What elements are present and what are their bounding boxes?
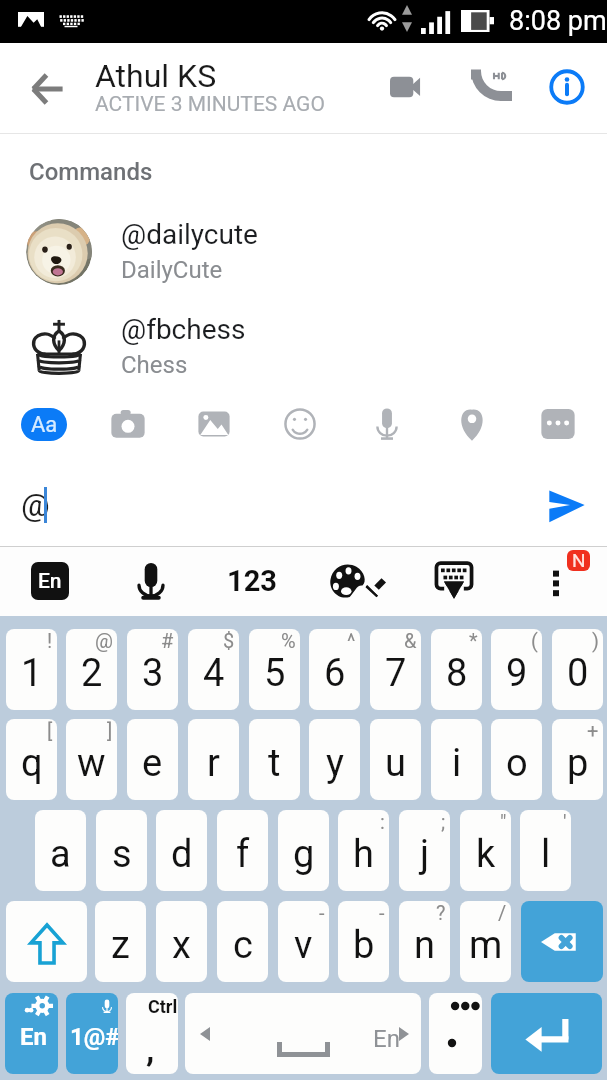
button[interactable]: a: [35, 810, 86, 891]
button[interactable]: #: [127, 629, 178, 710]
staticText: z: [111, 923, 130, 968]
button[interactable]: e: [127, 719, 178, 800]
button[interactable]: c: [217, 901, 268, 982]
button[interactable]: g: [278, 810, 329, 891]
staticText: 8: [446, 651, 468, 696]
button[interactable]: ": [460, 810, 511, 891]
button[interactable]: [: [6, 719, 57, 800]
button[interactable]: &: [370, 629, 421, 710]
button[interactable]: @dailycute: [0, 214, 607, 290]
button[interactable]: :: [338, 810, 389, 891]
staticText: +: [587, 719, 599, 742]
button[interactable]: +: [552, 719, 603, 800]
staticText: N: [572, 550, 586, 570]
button[interactable]: !: [6, 629, 57, 710]
button[interactable]: Stickers: [274, 398, 326, 450]
button[interactable]: ): [552, 629, 603, 710]
staticText: En: [373, 1025, 400, 1053]
button[interactable]: Enter: [491, 993, 602, 1074]
button[interactable]: t: [249, 719, 300, 800]
staticText: m: [469, 923, 503, 968]
staticText: Chess: [121, 351, 188, 379]
button[interactable]: x: [156, 901, 207, 982]
button[interactable]: ': [520, 810, 571, 891]
button[interactable]: More: [532, 398, 584, 450]
staticText: ;: [441, 810, 446, 833]
button[interactable]: Video call: [381, 62, 431, 112]
button[interactable]: $: [188, 629, 239, 710]
button[interactable]: r: [188, 719, 239, 800]
staticText: &: [404, 629, 417, 652]
button[interactable]: (: [491, 629, 542, 710]
staticText: y: [326, 741, 344, 786]
button[interactable]: Space: [185, 993, 421, 1074]
button[interactable]: Theme: [323, 551, 383, 611]
staticText: ): [592, 629, 599, 652]
button[interactable]: *: [431, 629, 482, 710]
button[interactable]: Language En: [5, 993, 58, 1074]
staticText: j: [420, 832, 430, 877]
button[interactable]: @fbchess: [0, 309, 607, 385]
button[interactable]: -: [338, 901, 389, 982]
staticText: Athul KS: [95, 57, 217, 95]
button[interactable]: -: [278, 901, 329, 982]
staticText: d: [171, 832, 193, 877]
button[interactable]: ]: [66, 719, 117, 800]
button[interactable]: Back: [21, 63, 73, 115]
button[interactable]: Numbers: [222, 551, 282, 611]
button[interactable]: Send: [541, 479, 593, 531]
staticText: @fbchess: [121, 313, 246, 346]
staticText: v: [294, 923, 313, 968]
button[interactable]: ^: [309, 629, 360, 710]
button[interactable]: Hide keyboard: [424, 551, 484, 611]
button[interactable]: Shift: [6, 901, 87, 982]
button[interactable]: Aa: [21, 408, 67, 441]
staticText: b: [353, 923, 375, 968]
staticText: ^: [347, 629, 356, 652]
staticText: p: [567, 741, 589, 786]
staticText: DailyCute: [121, 256, 223, 284]
staticText: f: [236, 832, 250, 877]
button[interactable]: [429, 993, 482, 1074]
button[interactable]: @: [66, 629, 117, 710]
button[interactable]: Language: [20, 551, 80, 611]
button[interactable]: Location: [446, 398, 498, 450]
staticText: /: [498, 901, 507, 924]
staticText: 5: [264, 651, 286, 696]
button[interactable]: y: [309, 719, 360, 800]
button[interactable]: s: [96, 810, 147, 891]
staticText: 6: [324, 651, 346, 696]
button[interactable]: Camera: [102, 398, 154, 450]
button[interactable]: Backspace: [521, 901, 603, 982]
staticText: @: [95, 629, 113, 652]
button[interactable]: ?: [399, 901, 450, 982]
button[interactable]: Photos: [188, 398, 240, 450]
button[interactable]: f: [217, 810, 268, 891]
button[interactable]: 1@#: [66, 993, 118, 1074]
staticText: 3: [142, 651, 164, 696]
staticText: 1@#: [70, 1023, 118, 1051]
button[interactable]: Ctrl: [126, 993, 178, 1074]
button[interactable]: Voice input: [121, 551, 181, 611]
button[interactable]: Menu: [526, 551, 586, 611]
staticText: Ctrl: [148, 996, 178, 1017]
staticText: 1: [21, 651, 43, 696]
button[interactable]: /: [460, 901, 511, 982]
button[interactable]: o: [491, 719, 542, 800]
button[interactable]: %: [249, 629, 300, 710]
staticText: 123: [227, 564, 277, 598]
button[interactable]: i: [431, 719, 482, 800]
button[interactable]: Conversation info: [542, 62, 592, 112]
button[interactable]: Voice call: [462, 62, 512, 112]
staticText: #: [161, 629, 174, 652]
staticText: q: [21, 741, 43, 786]
staticText: x: [172, 923, 191, 968]
staticText: g: [293, 832, 315, 877]
staticText: s: [112, 832, 132, 877]
button[interactable]: Voice message: [361, 398, 413, 450]
button[interactable]: u: [370, 719, 421, 800]
button[interactable]: d: [156, 810, 207, 891]
staticText: k: [476, 832, 496, 877]
button[interactable]: ;: [399, 810, 450, 891]
button[interactable]: z: [95, 901, 146, 982]
